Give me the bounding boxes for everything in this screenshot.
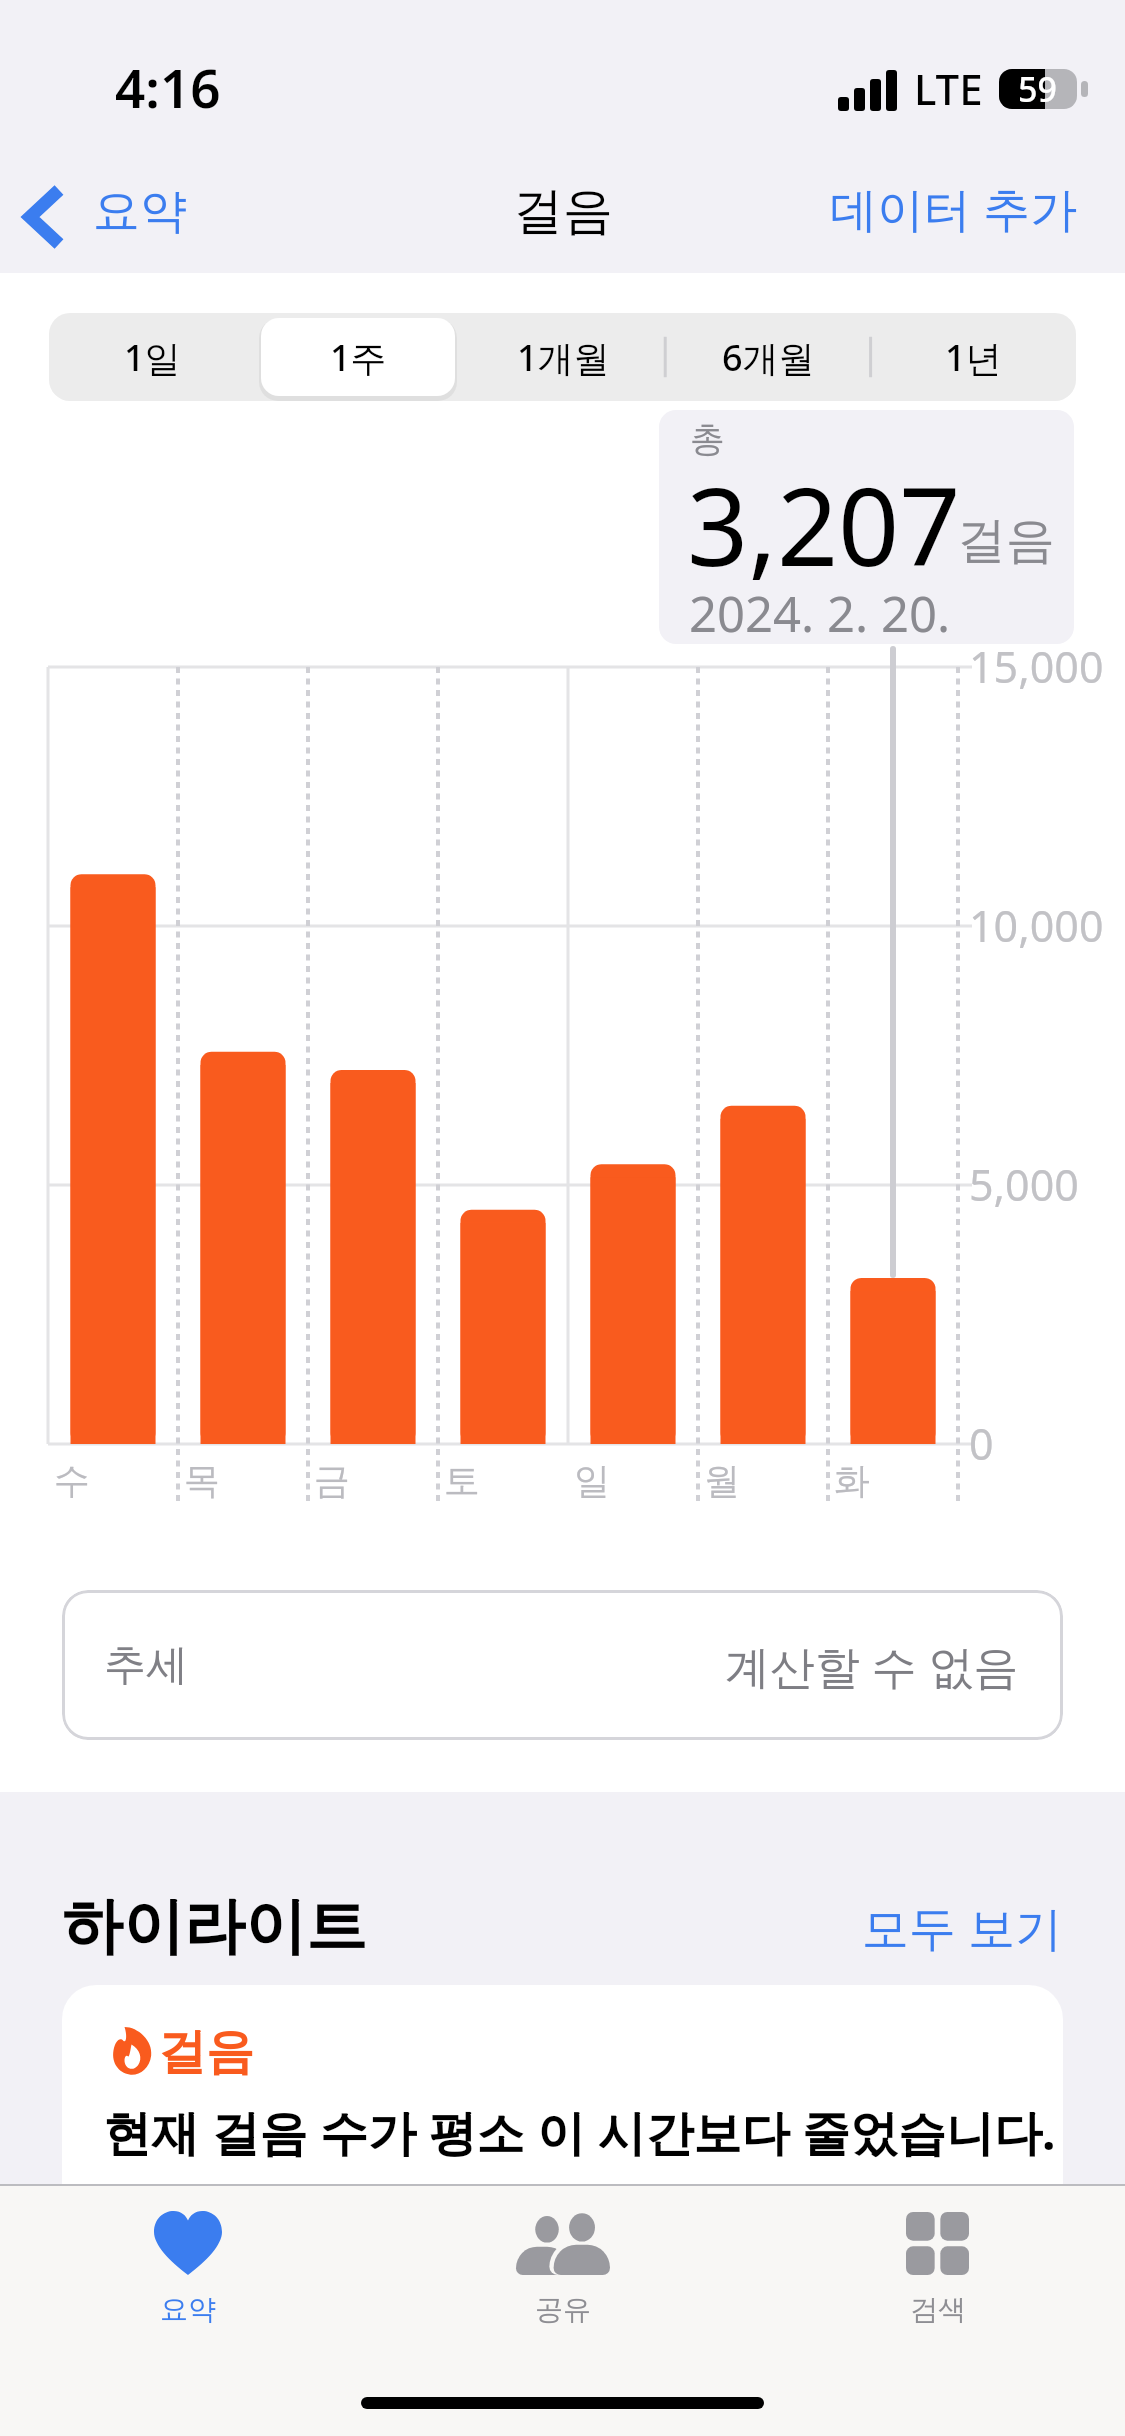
staticText: LTE: [914, 60, 983, 117]
staticText: 1주: [330, 333, 387, 382]
staticText: 월: [704, 1458, 740, 1503]
staticText: 3,207: [687, 452, 961, 598]
button[interactable]: 1개월: [461, 313, 666, 401]
staticText: 1개월: [517, 333, 610, 382]
staticText: 요약: [160, 2292, 216, 2327]
staticText: 총: [690, 417, 725, 461]
staticText: 검색: [910, 2292, 966, 2327]
button[interactable]: 6개월: [666, 313, 871, 401]
staticText: 계산할 수 없음: [725, 1635, 1019, 1696]
staticText: 4:16: [115, 51, 221, 123]
button[interactable]: 데이터 추가: [830, 176, 1078, 240]
staticText: 목: [184, 1458, 220, 1503]
staticText: 추세: [104, 1639, 188, 1692]
staticText: 1일: [124, 333, 181, 382]
staticText: 걸음: [513, 180, 613, 243]
button[interactable]: Summary: [0, 2210, 375, 2327]
staticText: 2024. 2. 20.: [689, 580, 951, 644]
button[interactable]: 요약: [22, 160, 222, 273]
button[interactable]: 모두 보기: [862, 1895, 1063, 1959]
staticText: 10,000: [969, 896, 1104, 955]
staticText: 6개월: [722, 333, 815, 382]
staticText: 0: [969, 1414, 994, 1473]
staticText: 59: [1018, 66, 1057, 112]
staticText: 화: [834, 1458, 870, 1503]
button[interactable]: 1년: [871, 313, 1076, 401]
button[interactable]: Browse: [750, 2210, 1125, 2327]
staticText: 수: [54, 1458, 90, 1503]
staticText: 공유: [535, 2292, 591, 2327]
button[interactable]: Sharing: [375, 2210, 750, 2327]
button[interactable]: 1주: [255, 313, 461, 401]
staticText: 요약: [93, 182, 187, 241]
button[interactable]: 걸음: [62, 1985, 1063, 2242]
staticText: 5,000: [969, 1155, 1079, 1214]
staticText: 금: [314, 1458, 350, 1503]
staticText: 15,000: [969, 637, 1104, 696]
staticText: 일: [574, 1458, 610, 1503]
staticText: 하이라이트: [62, 1888, 367, 1965]
staticText: 토: [444, 1458, 480, 1503]
staticText: 1년: [945, 333, 1002, 382]
staticText: 걸음: [158, 2022, 254, 2082]
button[interactable]: 1일: [49, 313, 255, 401]
button[interactable]: 추세: [62, 1590, 1063, 1740]
staticText: 현재 걸음 수가 평소 이 시간보다 줄었습니다.: [103, 2099, 1056, 2165]
staticText: 걸음: [957, 510, 1055, 572]
